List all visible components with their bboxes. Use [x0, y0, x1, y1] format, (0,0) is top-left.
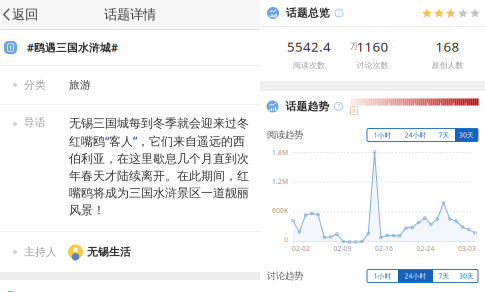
staticText: 168 [435, 38, 459, 55]
staticText: 03-03 [458, 244, 476, 253]
button[interactable]: 24小时 [398, 128, 433, 141]
staticText: 导语 [24, 116, 46, 129]
staticText: 7天 [438, 131, 449, 139]
staticText: 原创人数 [431, 60, 463, 70]
staticText: 24小时 [404, 272, 426, 280]
button[interactable]: 7天 [433, 128, 455, 141]
staticText: ? [337, 102, 340, 111]
staticText: 话题趋势 [285, 100, 329, 113]
button[interactable]: 30天 [455, 128, 478, 141]
staticText: 返回 [12, 6, 38, 23]
staticText: 1小时 [373, 131, 391, 139]
button[interactable]: 7天 [433, 269, 455, 282]
staticText: 1小时 [373, 272, 391, 280]
staticText: #鸥遇三国水浒城# [27, 40, 118, 55]
staticText: 阅读次数 [293, 60, 325, 70]
staticText: 24小时 [404, 131, 426, 139]
staticText: 5542.4 [287, 38, 331, 55]
staticText: 02-24 [416, 244, 434, 253]
staticText: 30天 [459, 272, 474, 280]
button[interactable]: #鸥遇三国水浒城# [0, 30, 260, 65]
staticText: 主持人 [24, 245, 57, 258]
staticText: 无锡三国城每到冬季就会迎来过冬红嘴鸥“客人”，它们来自遥远的西伯利亚，在这里歇息… [69, 116, 249, 218]
button[interactable]: 返回 [0, 0, 46, 29]
button[interactable]: 30天 [455, 269, 478, 282]
staticText: 1.2M [272, 177, 288, 186]
button[interactable]: 1小时 [367, 128, 398, 141]
staticText: 02-02 [292, 244, 310, 253]
staticText: 无锡生活 [87, 245, 131, 258]
staticText: 讨论次数 [356, 60, 388, 70]
staticText: ? [337, 9, 340, 17]
staticText: 讨论趋势 [267, 270, 303, 282]
staticText: 0 [352, 107, 355, 114]
staticText: 万 [350, 41, 358, 51]
button[interactable]: 主持人 [0, 232, 260, 272]
staticText: 分类 [24, 78, 46, 91]
staticText: 30天 [459, 131, 474, 139]
staticText: 1.8M [272, 148, 288, 157]
staticText: 600K [272, 206, 288, 215]
staticText: 阅读趋势 [267, 129, 303, 141]
staticText: 02-16 [375, 244, 393, 253]
button[interactable]: 24小时 [398, 269, 433, 282]
staticText: 7天 [438, 272, 449, 280]
staticText: 1160 [356, 38, 388, 55]
button[interactable]: 1小时 [367, 269, 398, 282]
staticText: 旅游 [69, 78, 91, 91]
staticText: 话题详情 [104, 6, 156, 23]
staticText: 02-09 [333, 244, 351, 253]
staticText: 话题总览 [286, 6, 330, 19]
staticText: 0 [284, 235, 288, 244]
